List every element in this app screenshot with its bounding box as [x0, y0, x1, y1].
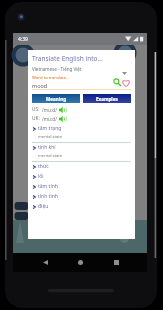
button[interactable]: UK: [32, 114, 131, 123]
staticText: /muːd/ [42, 107, 57, 113]
staticText: mental state [38, 153, 63, 159]
staticText: US: [32, 106, 40, 113]
staticText: điệu [38, 203, 49, 210]
button[interactable]: tính tình [32, 193, 131, 202]
staticText: UK: [32, 115, 40, 122]
button[interactable]: Favourites [121, 78, 131, 88]
staticText: thức [38, 163, 49, 170]
staticText: Translate English into... [32, 54, 103, 63]
button[interactable]: thức [32, 163, 131, 172]
staticText: /muːd/ [42, 116, 57, 122]
staticText: Examples [96, 96, 118, 102]
button[interactable]: Search [113, 78, 123, 88]
button[interactable]: Recent apps [109, 253, 123, 272]
staticText: Vietnamese - Tiếng Việt [32, 66, 82, 72]
staticText: Word to translate... [32, 75, 70, 81]
staticText: 4:39 [18, 36, 28, 43]
button[interactable]: tâm trạng [32, 125, 131, 143]
staticText: tính khí [38, 144, 56, 151]
button[interactable]: tính khí [32, 144, 131, 162]
button[interactable]: Home [73, 253, 87, 272]
staticText: mental state [38, 134, 63, 140]
button[interactable]: điệu [32, 203, 131, 212]
button[interactable]: Back [38, 253, 52, 272]
staticText: tính tình [38, 193, 58, 200]
staticText: tâm tính [38, 183, 58, 190]
button[interactable]: tâm tính [32, 183, 131, 192]
button[interactable]: Examples [83, 94, 131, 103]
staticText: Meaning [46, 96, 67, 102]
staticText: lối [38, 173, 44, 180]
staticText: mood [32, 82, 48, 89]
button[interactable]: US: [32, 105, 131, 114]
button[interactable]: Meaning [32, 94, 80, 103]
staticText: tâm trạng [38, 125, 62, 132]
button[interactable]: lối [32, 173, 131, 182]
